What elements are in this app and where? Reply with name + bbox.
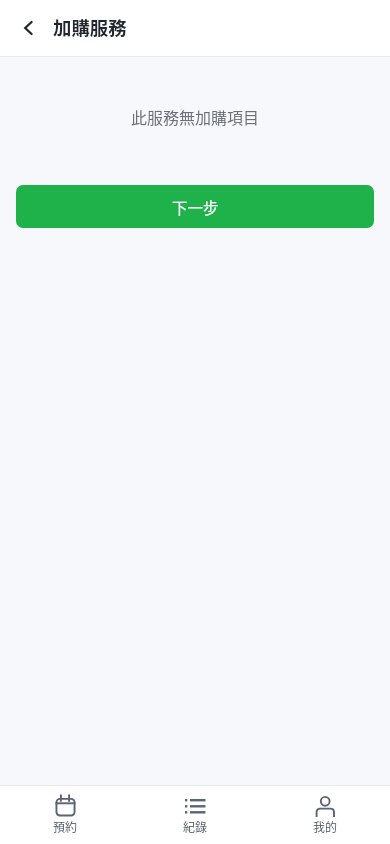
button[interactable]: Back [4, 4, 52, 52]
staticText: 此服務無加購項目 [0, 105, 390, 128]
button[interactable]: 我的 [260, 786, 390, 844]
staticText: 我的 [313, 818, 338, 835]
staticText: 下一步 [172, 196, 219, 218]
button[interactable]: 下一步 [16, 185, 374, 228]
staticText: 紀錄 [183, 818, 208, 835]
button[interactable]: 紀錄 [130, 786, 260, 844]
staticText: 加購服務 [53, 14, 127, 41]
button[interactable]: 預約 [0, 786, 130, 844]
staticText: 預約 [53, 818, 78, 835]
